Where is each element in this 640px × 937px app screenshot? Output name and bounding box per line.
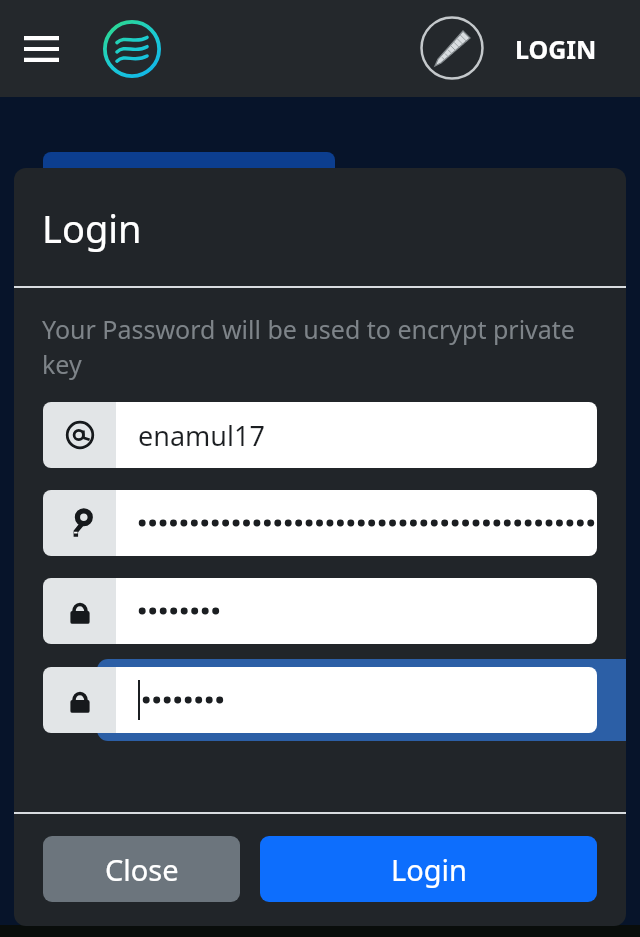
- button[interactable]: Menu: [12, 24, 70, 74]
- button[interactable]: [43, 667, 597, 733]
- staticText: LOGIN: [515, 32, 597, 66]
- button[interactable]: [43, 578, 597, 644]
- button[interactable]: LOGIN: [502, 24, 610, 74]
- staticText: Login: [42, 202, 142, 254]
- button[interactable]: Close: [43, 836, 240, 902]
- button[interactable]: Login: [260, 836, 597, 902]
- staticText: Login: [391, 850, 467, 889]
- staticText: Your Password will be used to encrypt pr…: [42, 312, 598, 382]
- staticText: enamul17: [138, 417, 265, 454]
- button[interactable]: [43, 490, 597, 556]
- button[interactable]: App logo: [100, 17, 164, 81]
- button[interactable]: enamul17: [43, 402, 597, 468]
- staticText: Close: [105, 850, 179, 889]
- button[interactable]: Edit: [418, 14, 486, 82]
